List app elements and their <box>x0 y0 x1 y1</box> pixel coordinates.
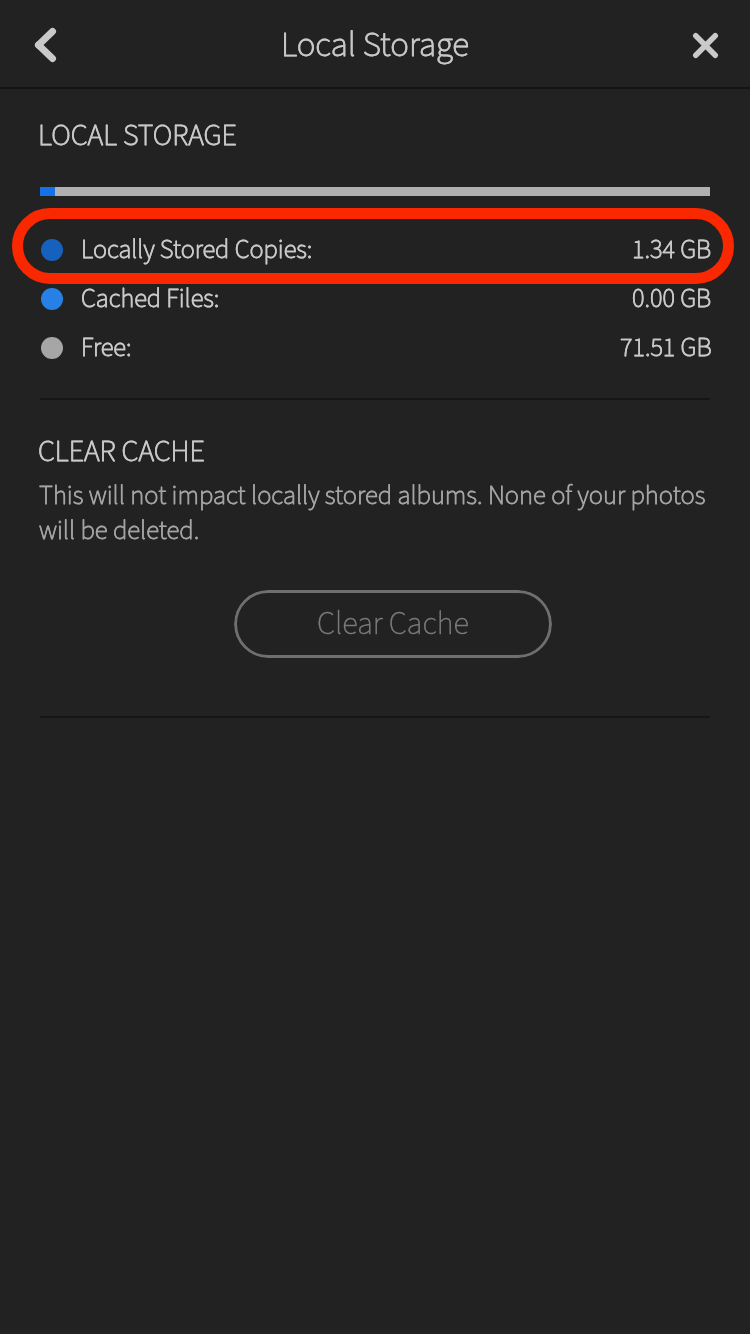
staticText: 71.51 GB <box>620 329 712 367</box>
staticText: Free: <box>81 329 132 367</box>
staticText: 0.00 GB <box>632 280 712 318</box>
staticText: Cached Files: <box>81 280 220 318</box>
button[interactable]: Locally Stored Copies: <box>0 225 750 274</box>
staticText: Locally Stored Copies: <box>81 231 313 269</box>
staticText: This will not impact locally stored albu… <box>39 477 719 550</box>
staticText: Cached Files: <box>81 280 220 318</box>
button[interactable]: Close <box>669 9 741 81</box>
staticText: Free: <box>81 329 132 367</box>
button[interactable]: Cached Files: <box>0 274 750 323</box>
button[interactable]: Back <box>9 9 81 81</box>
staticText: 71.51 GB <box>620 329 712 367</box>
staticText: 0.00 GB <box>632 280 712 318</box>
staticText: CLEAR CACHE <box>38 430 205 473</box>
staticText: 1.34 GB <box>632 231 712 269</box>
staticText: Local Storage <box>281 20 470 70</box>
staticText: Clear Cache <box>317 601 469 647</box>
staticText: LOCAL STORAGE <box>38 114 237 157</box>
staticText: LOCAL STORAGE <box>38 114 237 157</box>
button[interactable]: Clear Cache <box>234 590 552 658</box>
staticText: Local Storage <box>281 20 470 70</box>
staticText: This will not impact locally stored albu… <box>39 477 719 550</box>
button[interactable]: Free: <box>0 323 750 372</box>
staticText: 1.34 GB <box>632 231 712 269</box>
staticText: CLEAR CACHE <box>38 430 205 473</box>
staticText: Locally Stored Copies: <box>81 231 313 269</box>
staticText: Clear Cache <box>317 601 469 647</box>
